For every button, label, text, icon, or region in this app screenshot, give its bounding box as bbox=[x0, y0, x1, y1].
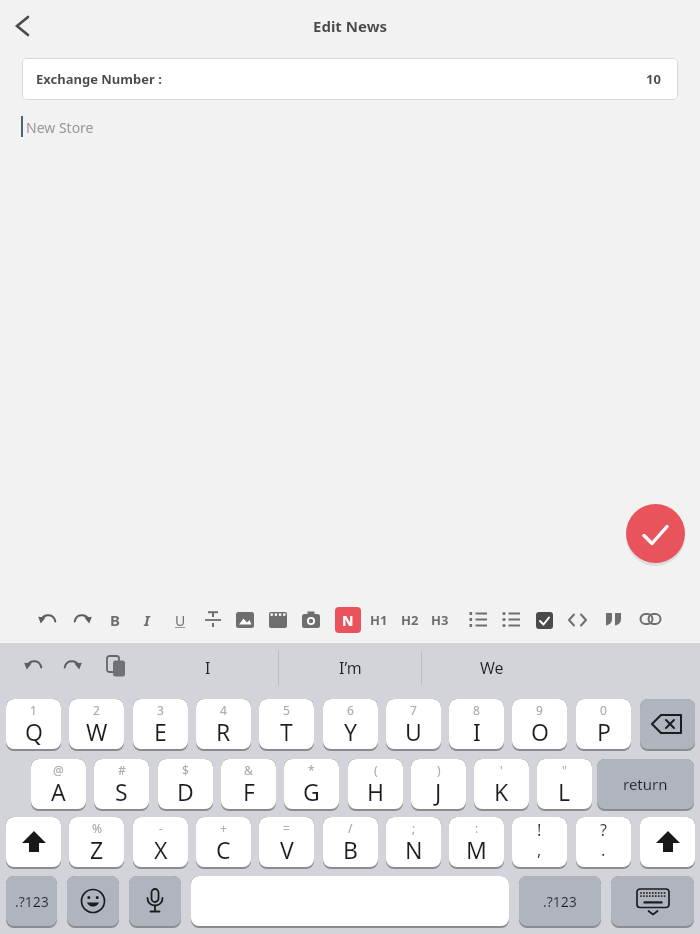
button[interactable]: 4 bbox=[196, 699, 251, 751]
button[interactable] bbox=[469, 611, 488, 629]
button[interactable]: # bbox=[94, 759, 149, 811]
staticText: L bbox=[558, 776, 571, 807]
button[interactable] bbox=[269, 611, 288, 629]
staticText: New Store bbox=[26, 118, 94, 137]
staticText: Edit News bbox=[313, 16, 387, 36]
button[interactable]: = bbox=[259, 817, 314, 869]
button[interactable]: @ bbox=[31, 759, 86, 811]
staticText: $ bbox=[182, 762, 189, 778]
staticText: # bbox=[118, 762, 126, 778]
button[interactable]: ) bbox=[411, 759, 466, 811]
button[interactable] bbox=[12, 14, 34, 38]
staticText: : bbox=[475, 820, 479, 836]
button[interactable] bbox=[204, 611, 222, 629]
button[interactable]: 6 bbox=[323, 699, 378, 751]
staticText: We bbox=[480, 657, 504, 679]
button[interactable]: ( bbox=[348, 759, 403, 811]
button[interactable]: We bbox=[432, 646, 552, 690]
button[interactable]: & bbox=[221, 759, 276, 811]
button[interactable]: / bbox=[323, 817, 378, 869]
button[interactable] bbox=[611, 876, 694, 928]
staticText: M bbox=[466, 834, 487, 865]
button[interactable]: I bbox=[148, 646, 268, 690]
button[interactable]: 0 bbox=[576, 699, 631, 751]
button[interactable]: + bbox=[196, 817, 251, 869]
staticText: return bbox=[623, 774, 668, 794]
button[interactable] bbox=[568, 613, 587, 627]
button[interactable]: U bbox=[166, 607, 194, 633]
button[interactable]: 5 bbox=[259, 699, 314, 751]
button[interactable] bbox=[191, 876, 509, 928]
button[interactable]: .?123 bbox=[519, 876, 601, 928]
button[interactable]: H1 bbox=[365, 607, 393, 633]
button[interactable]: 9 bbox=[512, 699, 567, 751]
staticText: & bbox=[244, 762, 253, 778]
button[interactable]: N bbox=[335, 607, 361, 633]
button[interactable] bbox=[502, 611, 521, 629]
button[interactable]: 1 bbox=[6, 699, 61, 751]
button[interactable]: - bbox=[133, 817, 188, 869]
button[interactable]: 7 bbox=[386, 699, 441, 751]
button[interactable]: 2 bbox=[69, 699, 124, 751]
staticText: Z bbox=[90, 834, 104, 865]
button[interactable] bbox=[640, 817, 695, 869]
staticText: / bbox=[348, 820, 353, 836]
button[interactable]: ! bbox=[512, 817, 567, 869]
staticText: + bbox=[220, 820, 227, 836]
button[interactable] bbox=[605, 613, 622, 626]
staticText: ( bbox=[374, 762, 378, 778]
button[interactable]: $ bbox=[158, 759, 213, 811]
button[interactable]: Exchange Number : bbox=[22, 58, 678, 100]
button[interactable] bbox=[302, 611, 321, 629]
button[interactable]: ? bbox=[576, 817, 631, 869]
button[interactable]: 8 bbox=[449, 699, 504, 751]
button[interactable] bbox=[38, 611, 58, 629]
staticText: N bbox=[405, 834, 423, 865]
staticText: 8 bbox=[473, 702, 480, 718]
staticText: ? bbox=[600, 819, 607, 841]
button[interactable]: * bbox=[284, 759, 339, 811]
staticText: 10 bbox=[646, 70, 661, 88]
button[interactable] bbox=[62, 657, 82, 675]
button[interactable]: .?123 bbox=[6, 876, 57, 928]
button[interactable]: I’m bbox=[290, 646, 410, 690]
button[interactable]: % bbox=[69, 817, 124, 869]
staticText: J bbox=[435, 776, 442, 807]
staticText: X bbox=[154, 834, 168, 865]
button[interactable]: I bbox=[133, 607, 161, 633]
button[interactable]: 3 bbox=[133, 699, 188, 751]
button[interactable] bbox=[106, 655, 128, 679]
staticText: B bbox=[110, 610, 120, 630]
button[interactable] bbox=[626, 504, 685, 563]
button[interactable] bbox=[536, 612, 553, 629]
staticText: . bbox=[601, 839, 606, 861]
button[interactable] bbox=[129, 876, 181, 928]
button[interactable] bbox=[640, 699, 695, 751]
button[interactable]: ; bbox=[386, 817, 441, 869]
staticText: ' bbox=[500, 762, 503, 778]
staticText: 7 bbox=[410, 702, 417, 718]
staticText: 6 bbox=[347, 702, 354, 718]
staticText: D bbox=[177, 776, 194, 807]
button[interactable] bbox=[72, 611, 92, 629]
staticText: 4 bbox=[220, 702, 227, 718]
button[interactable]: return bbox=[597, 759, 694, 811]
button[interactable] bbox=[24, 657, 44, 675]
button[interactable]: ' bbox=[474, 759, 529, 811]
button[interactable]: " bbox=[537, 759, 592, 811]
staticText: % bbox=[92, 820, 102, 836]
staticText: 3 bbox=[157, 702, 164, 718]
staticText: U bbox=[175, 611, 186, 630]
button[interactable] bbox=[67, 876, 119, 928]
staticText: P bbox=[597, 716, 611, 747]
button[interactable]: B bbox=[101, 607, 129, 633]
staticText: I’m bbox=[339, 657, 362, 679]
staticText: = bbox=[283, 820, 290, 836]
button[interactable]: H3 bbox=[426, 607, 454, 633]
button[interactable] bbox=[6, 817, 61, 869]
button[interactable] bbox=[236, 611, 255, 629]
button[interactable] bbox=[640, 613, 661, 626]
button[interactable]: H2 bbox=[396, 607, 424, 633]
staticText: H2 bbox=[401, 611, 419, 629]
button[interactable]: : bbox=[449, 817, 504, 869]
